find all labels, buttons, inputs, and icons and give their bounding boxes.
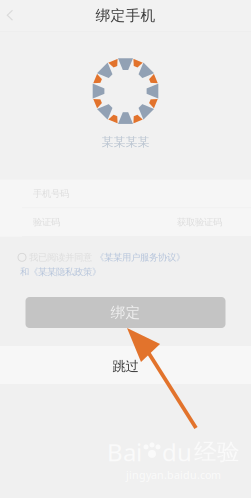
button[interactable]: Agree to terms	[18, 253, 26, 261]
button[interactable]: 《某某用户服务协议》	[95, 252, 185, 263]
button[interactable]: 和《某某隐私政策》	[20, 266, 101, 278]
staticText: 经验	[194, 438, 240, 466]
staticText: 和《某某隐私政策》	[20, 266, 101, 278]
staticText: 绑定	[110, 303, 140, 321]
staticText: 验证码	[33, 216, 60, 228]
staticText: Bai	[107, 436, 142, 468]
button[interactable]: 跳过	[112, 358, 138, 374]
staticText: 跳过	[112, 358, 138, 374]
staticText: 某某某某	[101, 135, 149, 149]
staticText: du	[162, 436, 192, 468]
staticText: 手机号码	[33, 188, 69, 199]
staticText: 获取验证码	[177, 216, 222, 228]
button[interactable]: Back	[0, 0, 24, 31]
staticText: 《某某用户服务协议》	[95, 252, 185, 263]
button[interactable]: 获取验证码	[177, 216, 222, 228]
button[interactable]: 绑定	[25, 297, 225, 328]
staticText: 绑定手机	[95, 6, 155, 24]
staticText: 我已阅读并同意	[29, 252, 92, 263]
